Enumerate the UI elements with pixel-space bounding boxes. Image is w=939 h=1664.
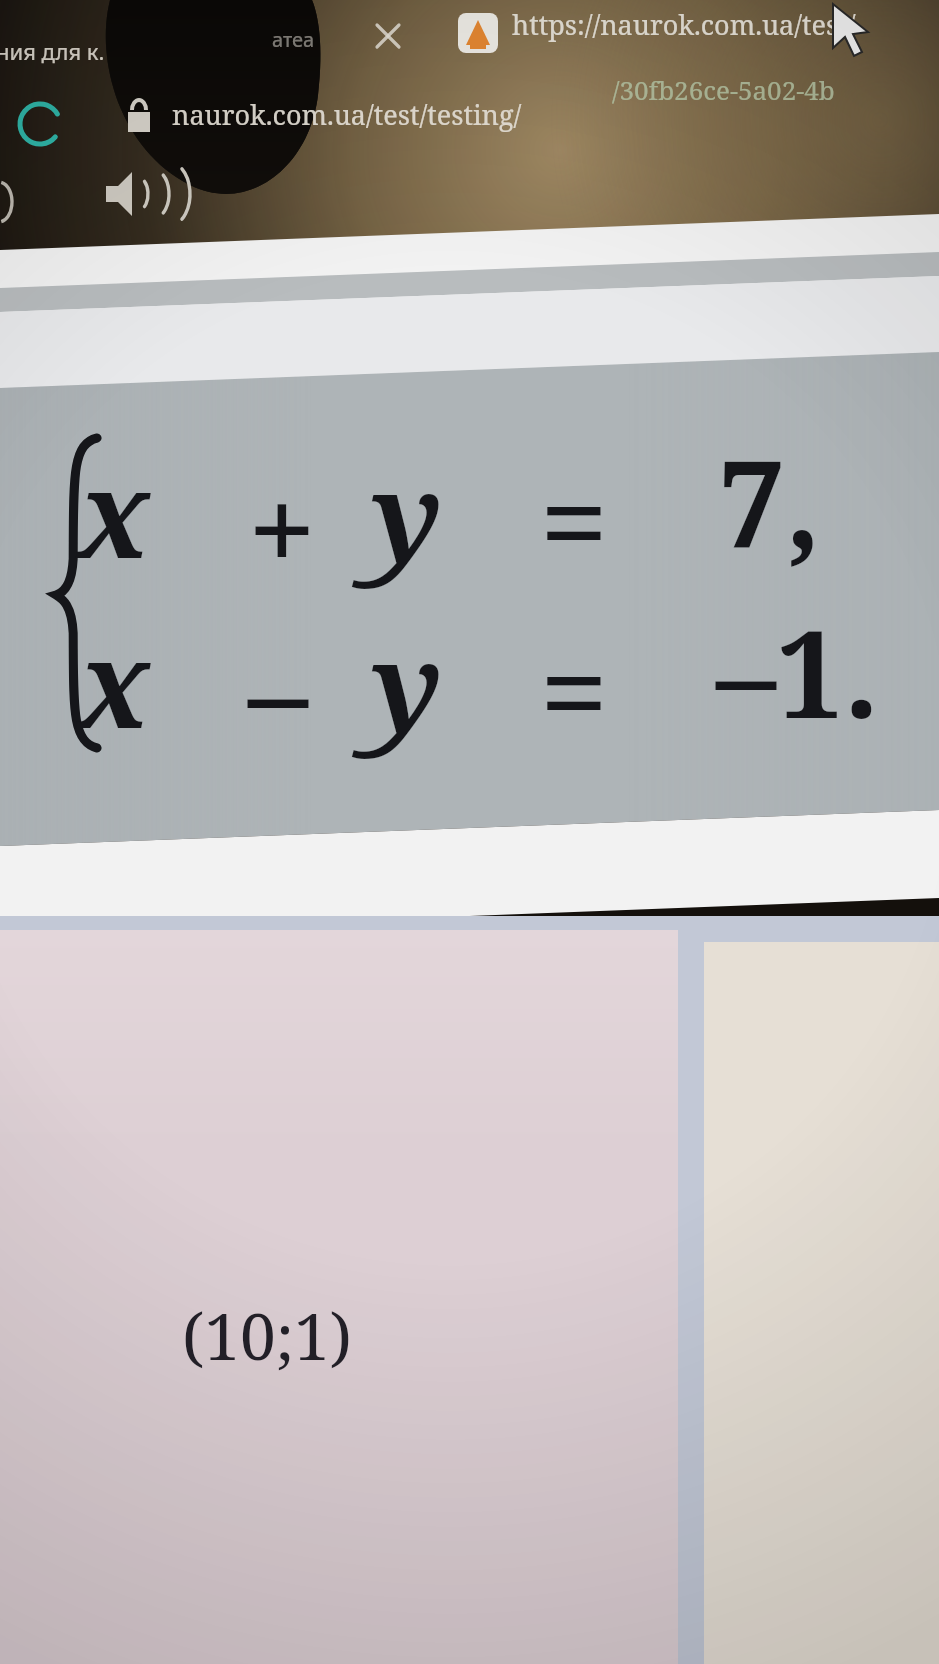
button[interactable]: Browser address bar bbox=[0, 0, 939, 120]
button[interactable]: Photo of a browser showing a maths test bbox=[0, 0, 939, 1664]
